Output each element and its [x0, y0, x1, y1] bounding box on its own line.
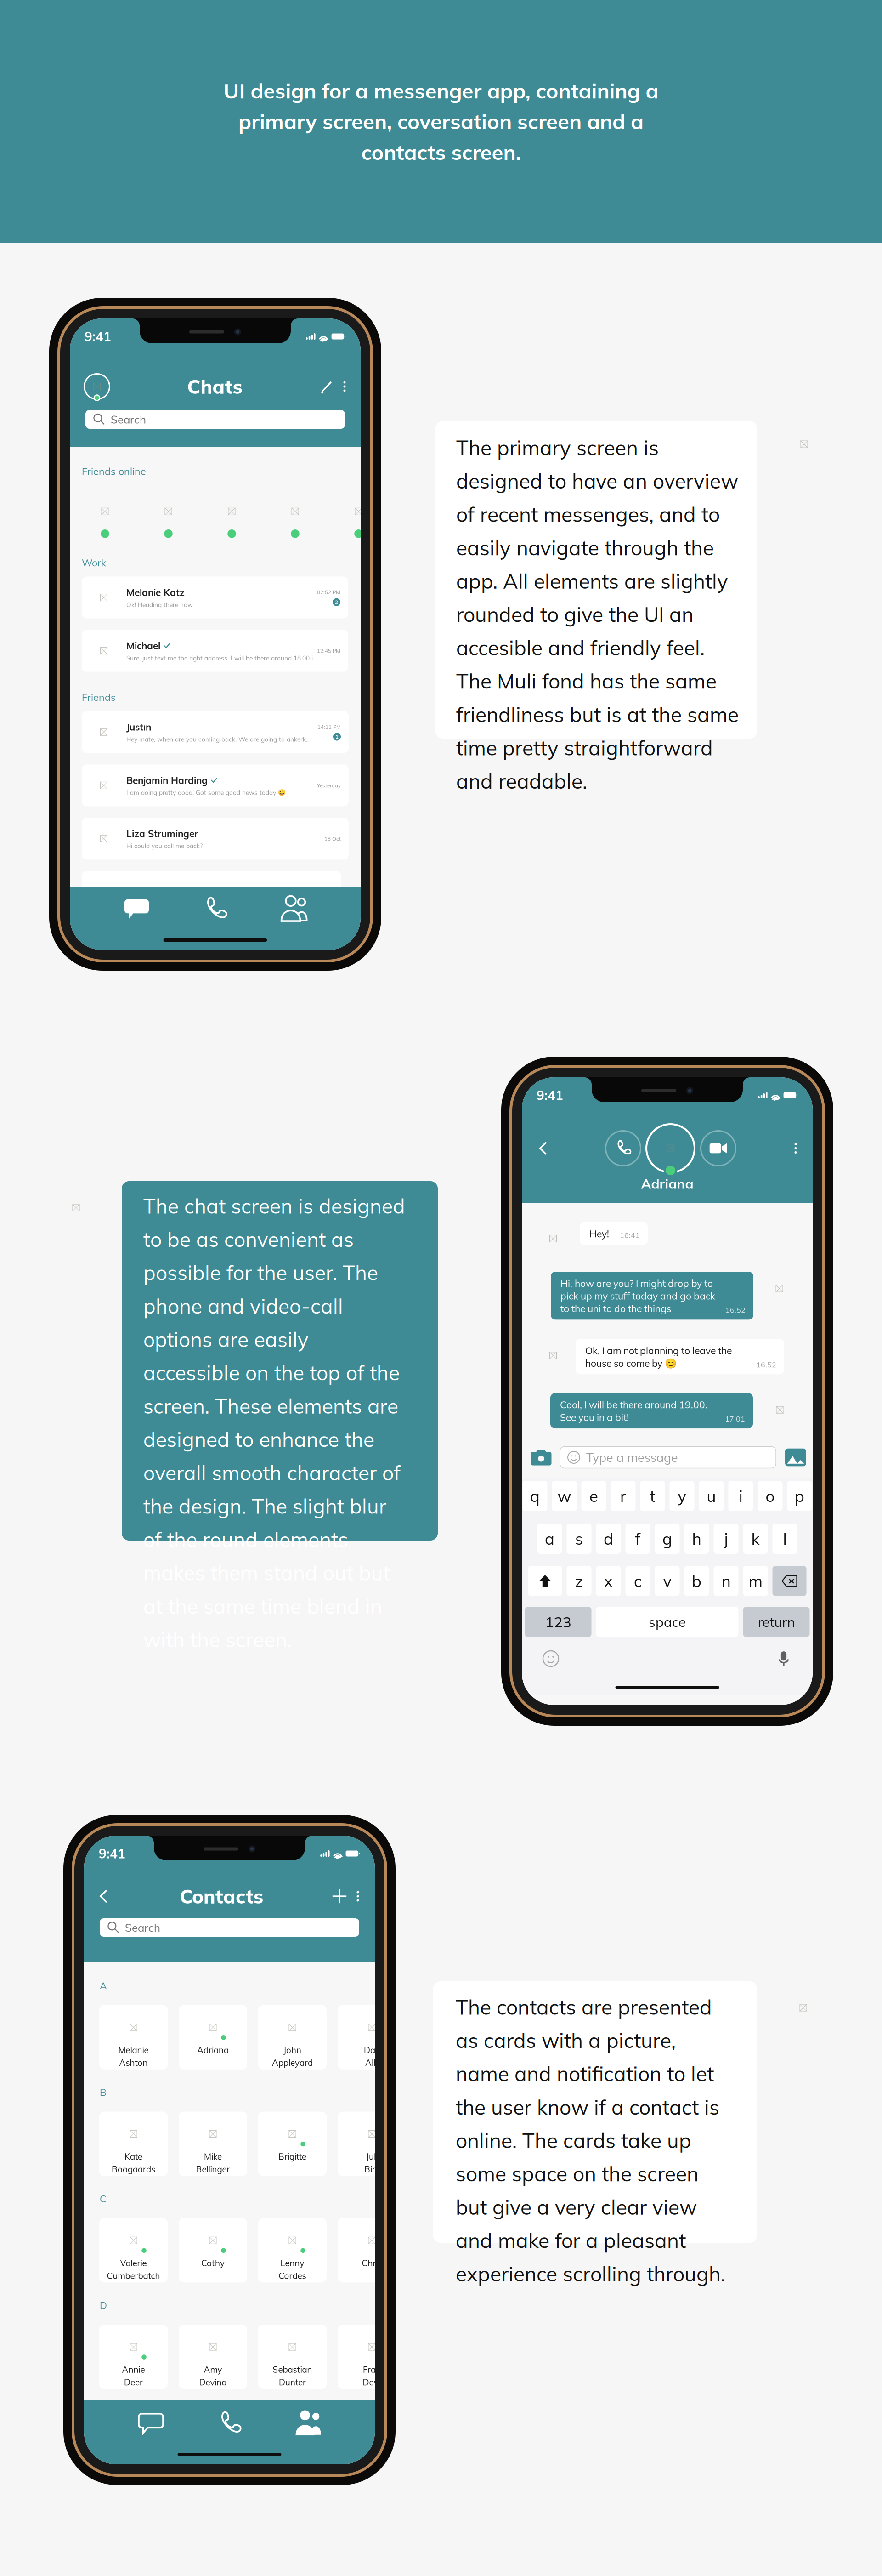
button[interactable]: d: [596, 1524, 621, 1554]
staticText: Adriana: [197, 2045, 229, 2055]
button[interactable]: Shift: [528, 1566, 562, 1596]
button[interactable]: Video call: [700, 1130, 736, 1166]
button[interactable]: l: [772, 1524, 797, 1554]
button[interactable]: b: [684, 1566, 709, 1596]
button[interactable]: return: [743, 1607, 810, 1637]
button[interactable]: Chats: [117, 895, 156, 923]
staticText: of recent messenges, and to: [456, 501, 720, 527]
button[interactable]: Mike: [179, 2112, 247, 2176]
button[interactable]: Adriana: [179, 2005, 247, 2069]
button[interactable]: Juli: [338, 2112, 406, 2176]
button[interactable]: space: [596, 1607, 738, 1637]
button[interactable]: j: [714, 1524, 738, 1554]
button[interactable]: Back: [535, 1138, 552, 1158]
button[interactable]: Chris: [338, 2218, 406, 2282]
image: [209, 2343, 217, 2351]
button[interactable]: Melanie Katz: [82, 577, 348, 618]
button[interactable]: i: [728, 1481, 753, 1511]
button[interactable]: Brigitte: [258, 2112, 327, 2176]
button[interactable]: z: [567, 1566, 591, 1596]
button[interactable]: Voice call: [605, 1130, 641, 1166]
button[interactable]: Liza Struminger: [82, 818, 349, 860]
image: [800, 441, 808, 448]
button[interactable]: John: [258, 2005, 327, 2069]
button[interactable]: r: [611, 1481, 636, 1511]
button[interactable]: Friend: [145, 486, 208, 537]
button[interactable]: Michael: [82, 630, 348, 672]
button[interactable]: Delete: [772, 1566, 806, 1596]
button[interactable]: Sebastian: [258, 2325, 327, 2389]
button[interactable]: q: [523, 1481, 547, 1511]
button[interactable]: More: [339, 377, 351, 396]
button[interactable]: t: [640, 1481, 665, 1511]
button[interactable]: Valerie: [99, 2218, 168, 2282]
button[interactable]: Search: [85, 410, 345, 429]
button[interactable]: Annie: [99, 2325, 168, 2389]
button[interactable]: Lenny: [258, 2218, 327, 2282]
button[interactable]: Amy: [179, 2325, 247, 2389]
staticText: Bellinger: [196, 2164, 230, 2175]
button[interactable]: u: [699, 1481, 724, 1511]
button[interactable]: Calls: [210, 2409, 249, 2438]
staticText: Hey!: [589, 1228, 609, 1240]
button[interactable]: Add contact: [331, 1886, 348, 1906]
staticText: Chris: [362, 2258, 382, 2268]
button[interactable]: Back: [96, 1886, 112, 1906]
button[interactable]: Calls: [195, 895, 235, 923]
button[interactable]: o: [758, 1481, 783, 1511]
button[interactable]: y: [670, 1481, 694, 1511]
staticText: possible for the user. The: [143, 1260, 378, 1285]
button[interactable]: Kate: [99, 2112, 168, 2176]
button[interactable]: Emoji: [539, 1647, 562, 1670]
button[interactable]: f: [625, 1524, 650, 1554]
button[interactable]: Profile: [84, 373, 110, 400]
button[interactable]: Friend: [271, 486, 335, 537]
button[interactable]: Justin: [82, 711, 349, 753]
button[interactable]: Friend: [81, 486, 145, 537]
button[interactable]: Contacts: [274, 895, 314, 923]
button[interactable]: Photos: [785, 1447, 807, 1467]
button[interactable]: c: [625, 1566, 650, 1596]
button[interactable]: g: [655, 1524, 680, 1554]
staticText: Deer: [124, 2377, 143, 2388]
button[interactable]: Friend: [208, 486, 271, 537]
staticText: some space on the screen: [456, 2161, 699, 2186]
image: [667, 1145, 674, 1152]
button[interactable]: Type a message: [560, 1447, 776, 1468]
button[interactable]: Dictate: [772, 1647, 795, 1670]
staticText: space: [649, 1613, 686, 1630]
staticText: Friends: [82, 691, 116, 703]
button[interactable]: 123: [525, 1607, 591, 1637]
button[interactable]: w: [552, 1481, 577, 1511]
button[interactable]: Friend: [335, 486, 398, 537]
staticText: Search: [125, 1921, 160, 1934]
button[interactable]: Compose: [319, 377, 335, 396]
staticText: phone and video-call: [143, 1293, 343, 1319]
button[interactable]: Benjamin Harding: [82, 764, 349, 806]
staticText: Yesterday: [317, 782, 341, 789]
button[interactable]: p: [787, 1481, 812, 1511]
button[interactable]: More: [352, 1886, 364, 1906]
button[interactable]: v: [655, 1566, 680, 1596]
button[interactable]: n: [714, 1566, 738, 1596]
button[interactable]: a: [537, 1524, 562, 1554]
staticText: I am doing pretty good. Got some good ne…: [126, 789, 286, 796]
button[interactable]: m: [743, 1566, 768, 1596]
button[interactable]: h: [684, 1524, 709, 1554]
staticText: Dew: [363, 2377, 381, 2388]
button[interactable]: s: [567, 1524, 591, 1554]
button[interactable]: Fran: [338, 2325, 406, 2389]
button[interactable]: Search: [100, 1918, 359, 1937]
button[interactable]: More: [790, 1138, 802, 1158]
button[interactable]: Contacts: [288, 2409, 328, 2438]
button[interactable]: Dav: [338, 2005, 406, 2069]
button[interactable]: x: [596, 1566, 621, 1596]
button[interactable]: Melanie: [99, 2005, 168, 2069]
button[interactable]: k: [743, 1524, 768, 1554]
staticText: Ok, I am not planning to leave the: [585, 1344, 732, 1357]
button[interactable]: Cathy: [179, 2218, 247, 2282]
button[interactable]: Camera: [530, 1447, 552, 1467]
button[interactable]: e: [581, 1481, 606, 1511]
button[interactable]: Chats: [131, 2409, 171, 2438]
